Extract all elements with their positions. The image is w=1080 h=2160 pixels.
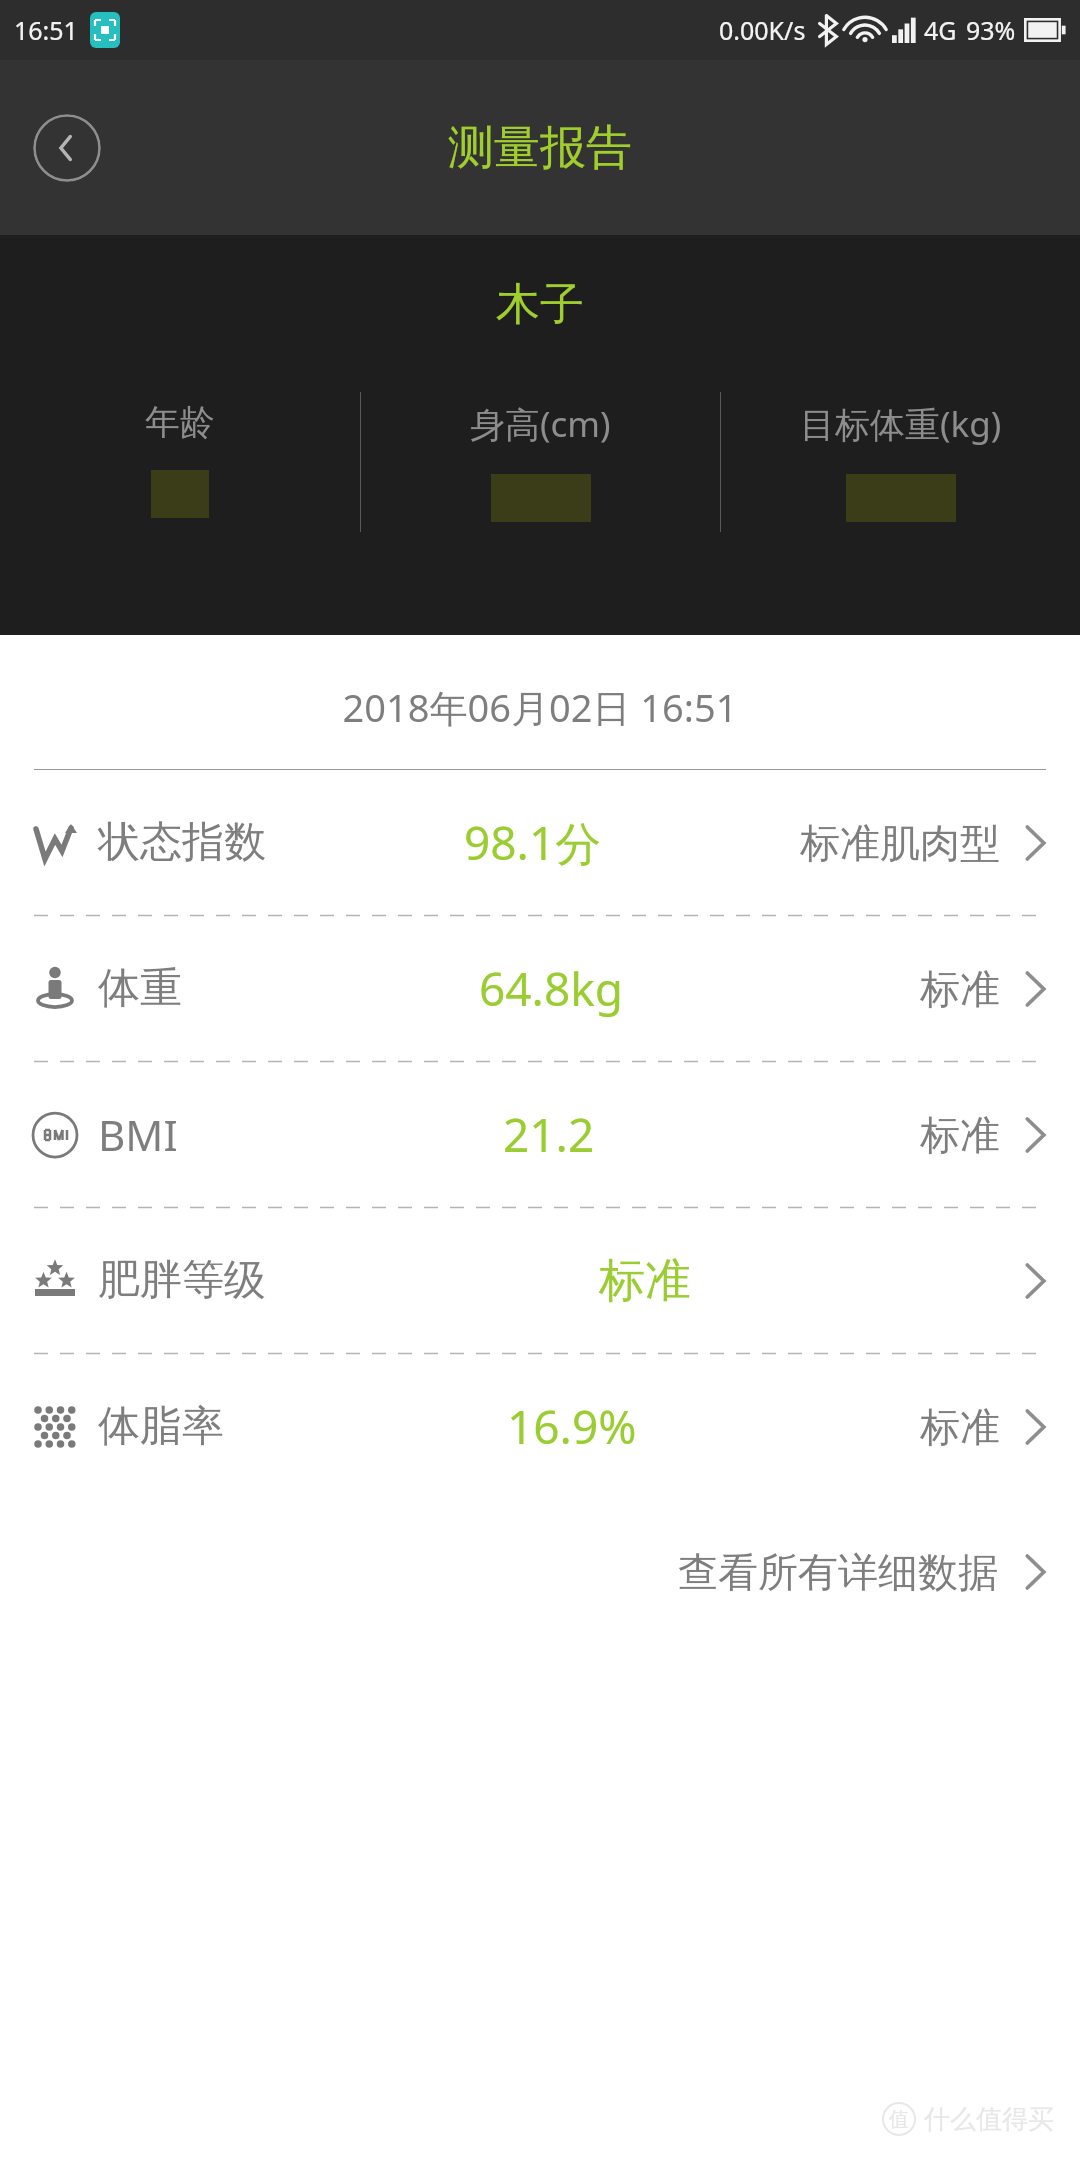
staticText: 身高(cm) [470,400,611,448]
staticText: 标准 [920,1110,1000,1160]
staticText: 2018年06月02日 16:51 [0,681,1080,733]
button[interactable]: 肥胖等级 [0,1208,1080,1353]
staticText: 64.8kg [479,957,624,1020]
staticText: 体脂率 [98,1400,224,1453]
staticText: 肥胖等级 [98,1254,266,1307]
staticText: 标准肌肉型 [800,818,1000,868]
staticText: 查看所有详细数据 [678,1547,998,1597]
staticText: 木子 [0,277,1080,332]
staticText: 年龄 [145,400,215,444]
staticText: 目标体重(kg) [800,400,1002,448]
button[interactable]: 年龄 [0,392,360,518]
button[interactable]: 查看所有详细数据 [0,1499,1080,1644]
staticText: 标准 [920,1402,1000,1452]
button[interactable]: 身高(cm) [361,392,720,522]
staticText: 4G [924,13,957,47]
button[interactable]: 体重 [0,916,1080,1061]
staticText: 状态指数 [98,816,266,869]
button[interactable]: BMI [0,1062,1080,1207]
staticText: 16:51 [14,13,78,47]
button[interactable]: 体脂率 [0,1354,1080,1499]
staticText: 标准 [920,964,1000,1014]
button[interactable]: Back [33,114,101,182]
staticText: 值 [889,2107,909,2132]
staticText: 0.00K/s [719,13,806,47]
staticText: 98.1分 [464,811,602,874]
staticText: 什么值得买 [924,2103,1054,2136]
staticText: 21.2 [503,1103,595,1166]
staticText: 93% [966,13,1016,47]
staticText: 测量报告 [448,119,632,177]
staticText: 16.9% [507,1395,637,1458]
button[interactable]: 目标体重(kg) [721,392,1080,522]
staticText: 体重 [98,962,182,1015]
staticText: 标准 [599,1252,691,1310]
button[interactable]: 状态指数 [0,770,1080,915]
staticText: BMI [98,1106,178,1163]
